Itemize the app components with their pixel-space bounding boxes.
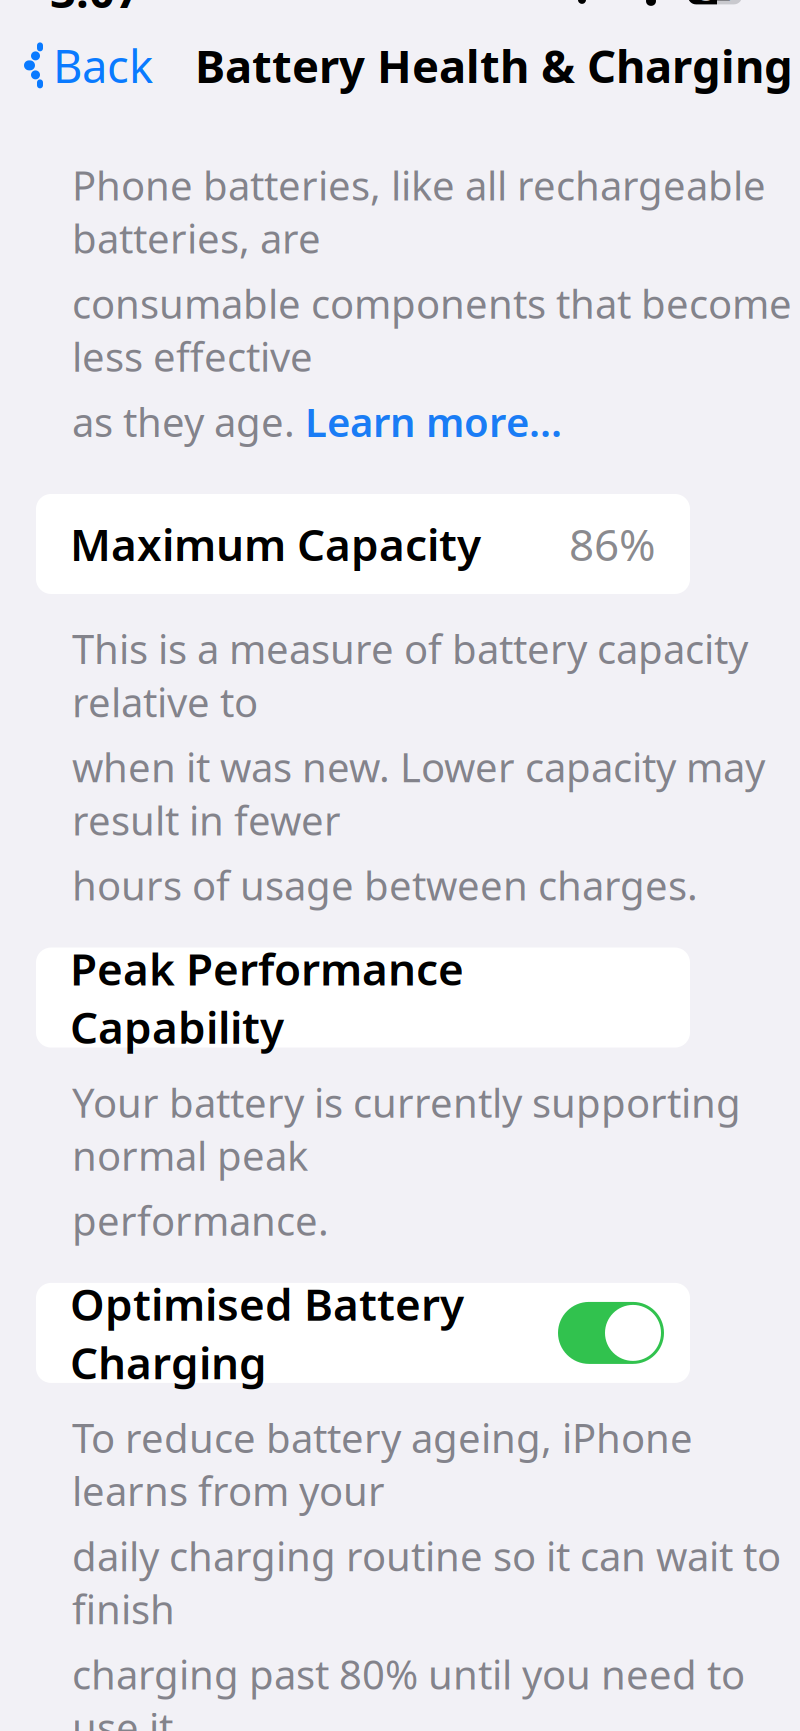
staticText: 2 — [715, 0, 730, 8]
staticText: Learn more... — [305, 395, 562, 448]
button[interactable]: Peak Performance Capability — [36, 948, 690, 1048]
staticText: Phone batteries, like all rechargeable b… — [72, 158, 766, 265]
staticText: Your battery is currently supporting nor… — [72, 1076, 741, 1182]
staticText: 3:07 — [50, 0, 141, 20]
staticText: when it was new. Lower capacity may resu… — [72, 740, 765, 846]
staticText: Battery Health & Charging — [195, 35, 793, 95]
button[interactable]: Maximum Capacity — [36, 494, 690, 594]
staticText: daily charging routine so it can wait to… — [72, 1529, 781, 1635]
staticText: charging past 80% until you need to use … — [72, 1647, 745, 1731]
staticText: To reduce battery ageing, iPhone learns … — [72, 1411, 693, 1517]
button[interactable]: Optimised Battery Charging — [558, 1302, 664, 1364]
staticText: 5 — [699, 0, 714, 8]
staticText: as they age. — [72, 395, 305, 448]
button[interactable]: Back — [0, 23, 169, 107]
button[interactable]: Learn more... — [305, 395, 562, 448]
staticText: Maximum Capacity — [70, 515, 481, 573]
staticText: This is a measure of battery capacity re… — [72, 622, 748, 728]
staticText: Back — [53, 35, 153, 95]
staticText: Peak Performance Capability — [70, 939, 464, 1056]
staticText: performance. — [72, 1194, 329, 1247]
staticText: hours of usage between charges. — [72, 858, 698, 911]
staticText: consumable components that become less e… — [72, 277, 792, 383]
staticText: Optimised Battery Charging — [70, 1274, 464, 1391]
staticText: 86% — [569, 515, 656, 573]
